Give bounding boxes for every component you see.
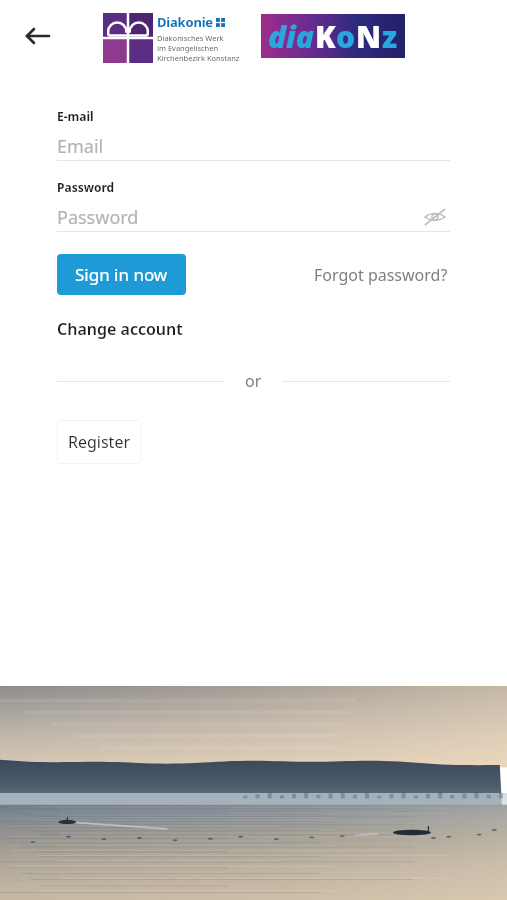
button[interactable]: Change account (57, 314, 183, 344)
staticText: Password (57, 179, 115, 195)
button[interactable]: Back (16, 14, 60, 58)
staticText: Diakonisches Werk (157, 33, 224, 43)
button[interactable]: Register (57, 420, 141, 464)
staticText: Forgot password? (314, 264, 448, 286)
staticText: Diakonie (157, 13, 213, 31)
staticText: z (382, 16, 398, 57)
staticText: dia (268, 16, 315, 57)
button[interactable]: Email (57, 132, 450, 160)
staticText: Register (68, 431, 131, 453)
staticText: im Evangelischen (157, 43, 219, 53)
staticText: o (336, 16, 356, 57)
staticText: N (356, 16, 382, 57)
staticText: Change account (57, 318, 183, 340)
staticText: E-mail (57, 108, 94, 124)
button[interactable]: Sign in now (57, 254, 186, 295)
button[interactable]: Password (57, 203, 450, 231)
button[interactable]: Forgot password? (312, 258, 450, 292)
staticText: Password (57, 205, 139, 230)
button[interactable]: Show password (420, 203, 450, 231)
staticText: K (315, 16, 336, 57)
staticText: or (245, 370, 262, 392)
staticText: Sign in now (75, 263, 168, 286)
staticText: Kirchenbezirk Konstanz (157, 53, 240, 63)
staticText: Email (57, 134, 104, 159)
